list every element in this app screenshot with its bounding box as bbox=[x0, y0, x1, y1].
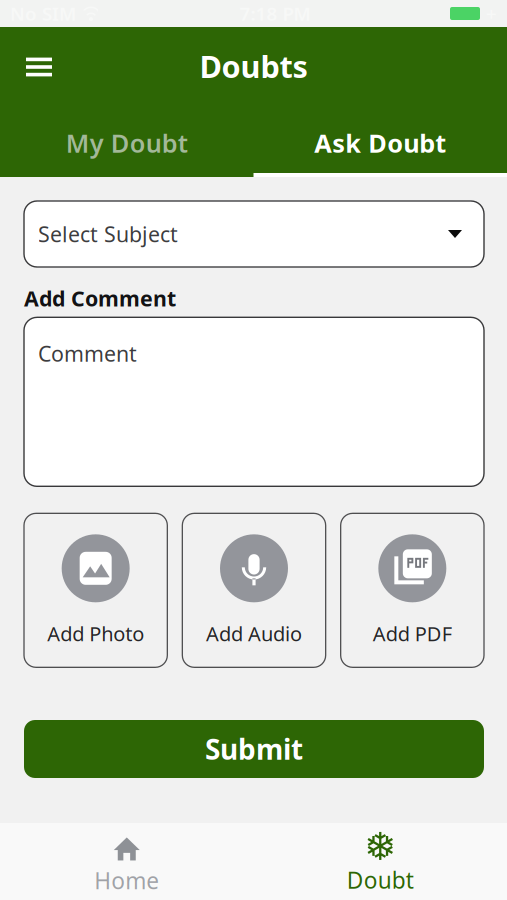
button[interactable]: Add Audio bbox=[182, 513, 326, 667]
button[interactable]: Home bbox=[0, 823, 253, 900]
button[interactable]: Add PDF bbox=[341, 513, 484, 667]
staticText: Add Comment bbox=[24, 284, 176, 312]
staticText: Add Audio bbox=[206, 620, 302, 647]
staticText: Comment bbox=[38, 339, 137, 368]
button[interactable]: My Doubt bbox=[0, 113, 253, 177]
staticText: Select Subject bbox=[38, 220, 178, 248]
button[interactable]: Menu bbox=[0, 39, 65, 101]
staticText: Submit bbox=[205, 730, 303, 768]
staticText: Add Photo bbox=[47, 620, 144, 647]
button[interactable]: Doubt bbox=[253, 823, 507, 900]
staticText: Home bbox=[94, 865, 159, 895]
button[interactable]: Ask Doubt bbox=[253, 113, 507, 177]
staticText: Ask Doubt bbox=[314, 126, 446, 160]
staticText: My Doubt bbox=[66, 126, 188, 160]
staticText: Doubt bbox=[347, 865, 414, 895]
button[interactable]: Submit bbox=[24, 720, 484, 778]
staticText: Add PDF bbox=[373, 620, 452, 647]
button[interactable]: Select Subject bbox=[24, 201, 484, 267]
button[interactable]: Add Photo bbox=[24, 513, 167, 667]
staticText: Doubts bbox=[199, 46, 307, 86]
